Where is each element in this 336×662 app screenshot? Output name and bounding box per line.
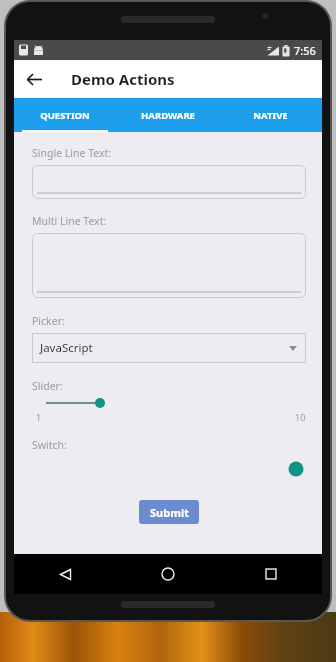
staticText: 7:56 [294, 43, 316, 58]
button[interactable]: JavaScript [32, 333, 306, 363]
staticText: Single Line Text: [32, 146, 112, 160]
staticText: HARDWARE [141, 109, 195, 122]
staticText: Multi Line Text: [32, 214, 107, 228]
staticText: Submit [150, 505, 189, 520]
button[interactable]: Home [116, 554, 219, 594]
staticText: Demo Actions [71, 69, 175, 89]
staticText: NATIVE [253, 109, 288, 122]
button[interactable]: Recent apps [219, 554, 322, 594]
button[interactable]: NATIVE [219, 98, 322, 132]
staticText: JavaScript [40, 340, 93, 356]
button[interactable]: Switch [32, 456, 306, 482]
staticText: Slider: [32, 379, 63, 393]
button[interactable]: Back [14, 554, 116, 594]
button[interactable]: HARDWARE [116, 98, 219, 132]
button[interactable] [32, 395, 306, 411]
button[interactable]: Back [14, 60, 54, 98]
button[interactable]: Submit [139, 500, 199, 524]
staticText: QUESTION [40, 109, 90, 122]
staticText: Picker: [32, 314, 65, 328]
button[interactable] [32, 165, 306, 199]
button[interactable] [32, 233, 306, 298]
staticText: Switch: [32, 438, 67, 452]
staticText: 1 [36, 411, 42, 423]
staticText: 10 [295, 411, 306, 423]
button[interactable]: QUESTION [14, 98, 116, 132]
